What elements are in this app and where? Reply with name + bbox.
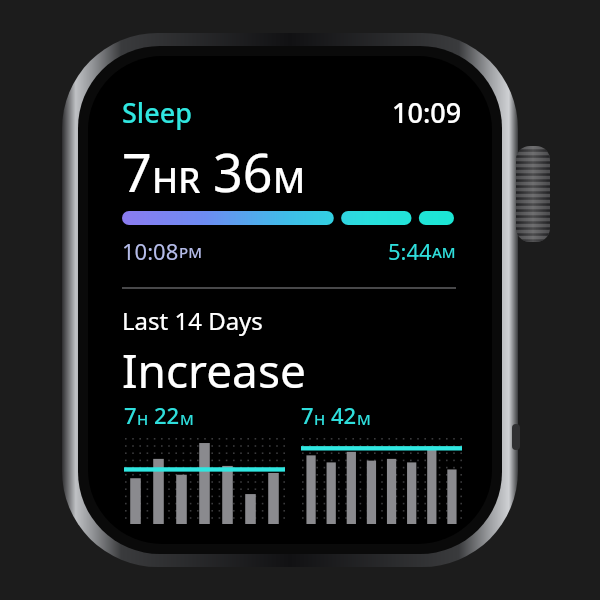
button[interactable]: 7 — [124, 400, 285, 524]
staticText: PM — [179, 242, 202, 262]
staticText: M — [273, 156, 306, 204]
button[interactable]: 7 — [301, 400, 462, 524]
staticText: 10:08 — [122, 236, 179, 266]
staticText: H — [314, 409, 326, 429]
staticText: HR — [152, 156, 201, 204]
staticText: 7 — [124, 400, 137, 430]
staticText: Increase — [122, 339, 306, 402]
button[interactable]: Side Button — [512, 424, 520, 450]
staticText: 36 — [213, 136, 273, 207]
staticText: 10:09 — [392, 94, 462, 131]
staticText: 5:44 — [388, 236, 432, 266]
staticText: M — [180, 409, 194, 429]
staticText: Last 14 Days — [122, 304, 263, 337]
staticText: 7 — [122, 136, 152, 207]
staticText: 7 — [301, 400, 314, 430]
staticText: AM — [432, 242, 456, 262]
staticText: 22 — [154, 400, 180, 430]
staticText: H — [137, 409, 149, 429]
button[interactable]: Sleep — [122, 94, 192, 131]
staticText: 42 — [331, 400, 357, 430]
staticText: M — [357, 409, 371, 429]
button[interactable]: Digital Crown — [516, 146, 550, 242]
